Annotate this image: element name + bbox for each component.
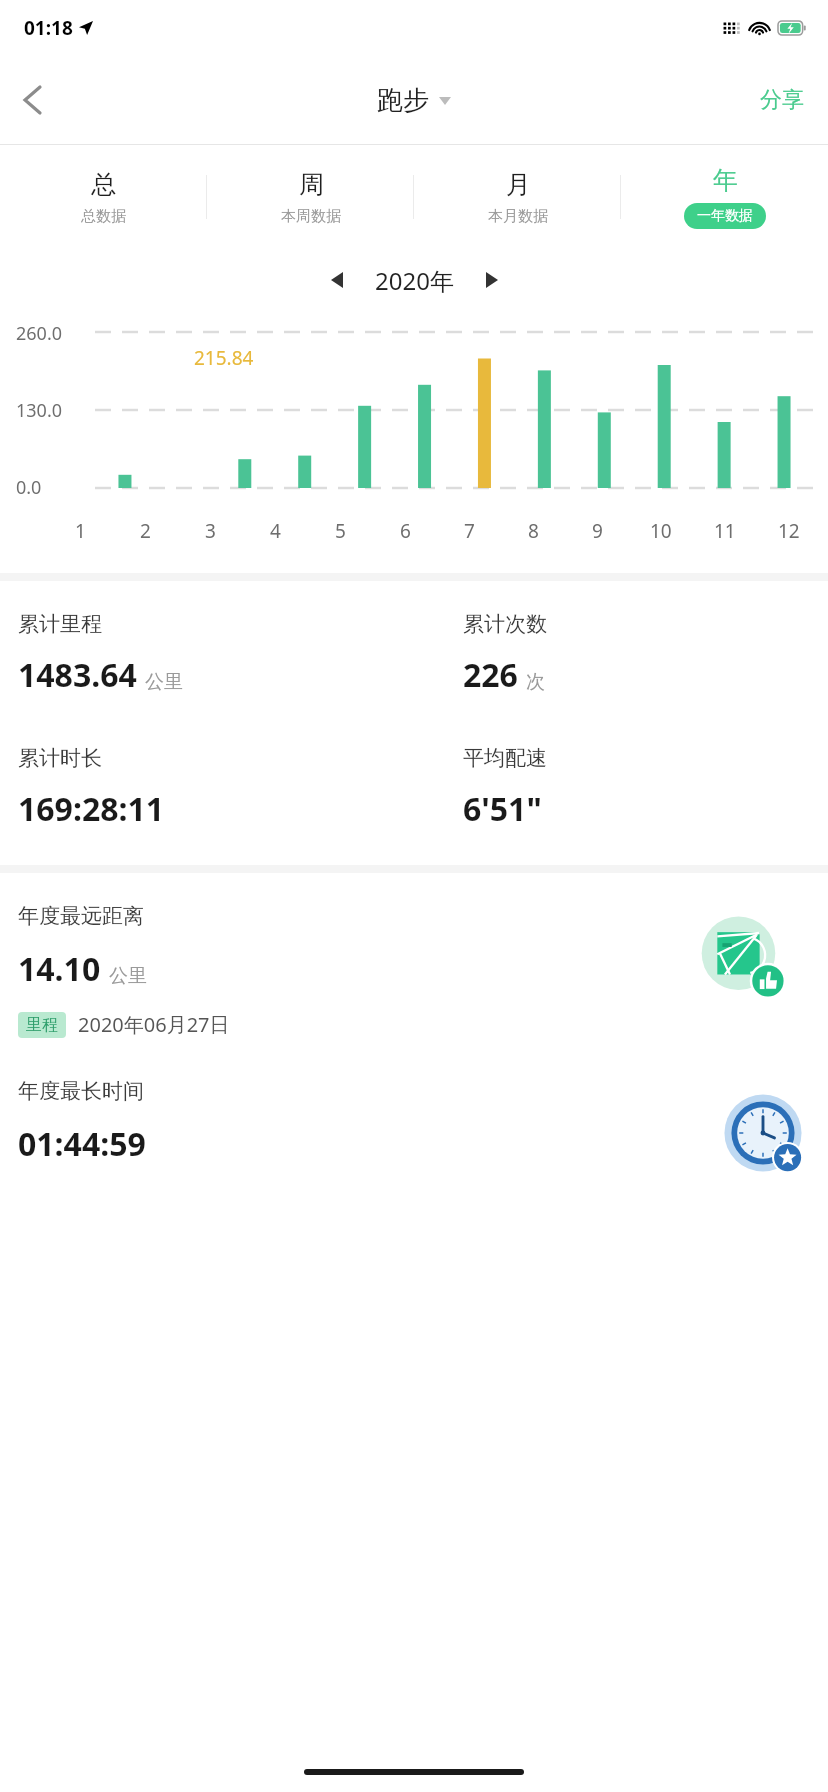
staticText: 公里 [109, 964, 147, 988]
staticText: 169:28:11 [18, 787, 165, 831]
staticText: 2020年 [375, 264, 454, 297]
button[interactable]: 周 [207, 145, 414, 249]
staticText: 2 [140, 518, 151, 544]
button[interactable]: Back [0, 68, 64, 132]
staticText: 6 [400, 518, 411, 544]
staticText: 11 [714, 518, 736, 544]
staticText: 年 [713, 165, 738, 196]
staticText: 2020年06月27日 [78, 1011, 230, 1038]
staticText: 年度最长时间 [18, 1078, 144, 1104]
staticText: 公里 [145, 670, 183, 694]
staticText: 4 [270, 518, 281, 544]
button[interactable]: 分享 [736, 72, 828, 128]
staticText: 01:44:59 [18, 1122, 146, 1166]
staticText: 10 [650, 518, 672, 544]
staticText: 年度最远距离 [18, 903, 144, 929]
staticText: 130.0 [16, 398, 63, 423]
staticText: 215.84 [194, 345, 254, 371]
button[interactable]: Next year [472, 260, 512, 300]
staticText: 1 [75, 518, 86, 544]
button[interactable]: Previous year [317, 260, 357, 300]
staticText: 里程 [26, 1015, 58, 1035]
staticText: 8 [528, 518, 539, 544]
staticText: 5 [335, 518, 346, 544]
staticText: 累计时长 [18, 745, 102, 771]
staticText: 周 [299, 169, 324, 200]
staticText: 累计次数 [463, 611, 547, 637]
staticText: 本月数据 [488, 207, 548, 226]
staticText: 跑步 [377, 84, 429, 117]
staticText: 14.10 [18, 947, 101, 991]
staticText: 一年数据 [697, 207, 753, 225]
staticText: 260.0 [16, 321, 63, 346]
staticText: 0.0 [16, 475, 42, 500]
staticText: 9 [592, 518, 603, 544]
staticText: 月 [506, 169, 531, 200]
staticText: 总数据 [81, 207, 126, 226]
staticText: 次 [526, 670, 545, 694]
staticText: 12 [778, 518, 800, 544]
button[interactable]: 跑步 [377, 84, 451, 117]
staticText: 本周数据 [281, 207, 341, 226]
button[interactable]: Route map [698, 911, 790, 1003]
staticText: 3 [205, 518, 216, 544]
button[interactable]: 年 [621, 145, 828, 249]
staticText: 01:18 [24, 15, 73, 41]
staticText: 6'51" [463, 787, 542, 831]
staticText: 累计里程 [18, 611, 102, 637]
button[interactable]: Medal [722, 1092, 804, 1174]
staticText: 1483.64 [18, 653, 137, 697]
staticText: 平均配速 [463, 745, 547, 771]
staticText: 7 [464, 518, 475, 544]
staticText: 分享 [760, 86, 804, 114]
button[interactable]: 月 [414, 145, 621, 249]
button[interactable]: 总 [0, 145, 207, 249]
staticText: 总 [91, 169, 116, 200]
staticText: 226 [463, 653, 518, 697]
